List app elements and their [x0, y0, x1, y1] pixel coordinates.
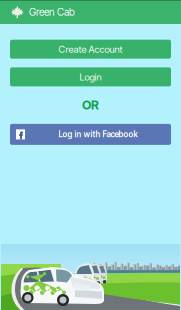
button[interactable]: Create Account	[10, 40, 171, 59]
staticText: OR	[82, 97, 99, 112]
staticText: Green Cab	[29, 6, 75, 18]
staticText: Log in with Facebook	[58, 129, 137, 139]
staticText: Create Account	[58, 43, 122, 55]
button[interactable]: Log in with Facebook	[10, 124, 171, 145]
button[interactable]: Login	[10, 67, 171, 86]
staticText: Login	[79, 71, 101, 83]
